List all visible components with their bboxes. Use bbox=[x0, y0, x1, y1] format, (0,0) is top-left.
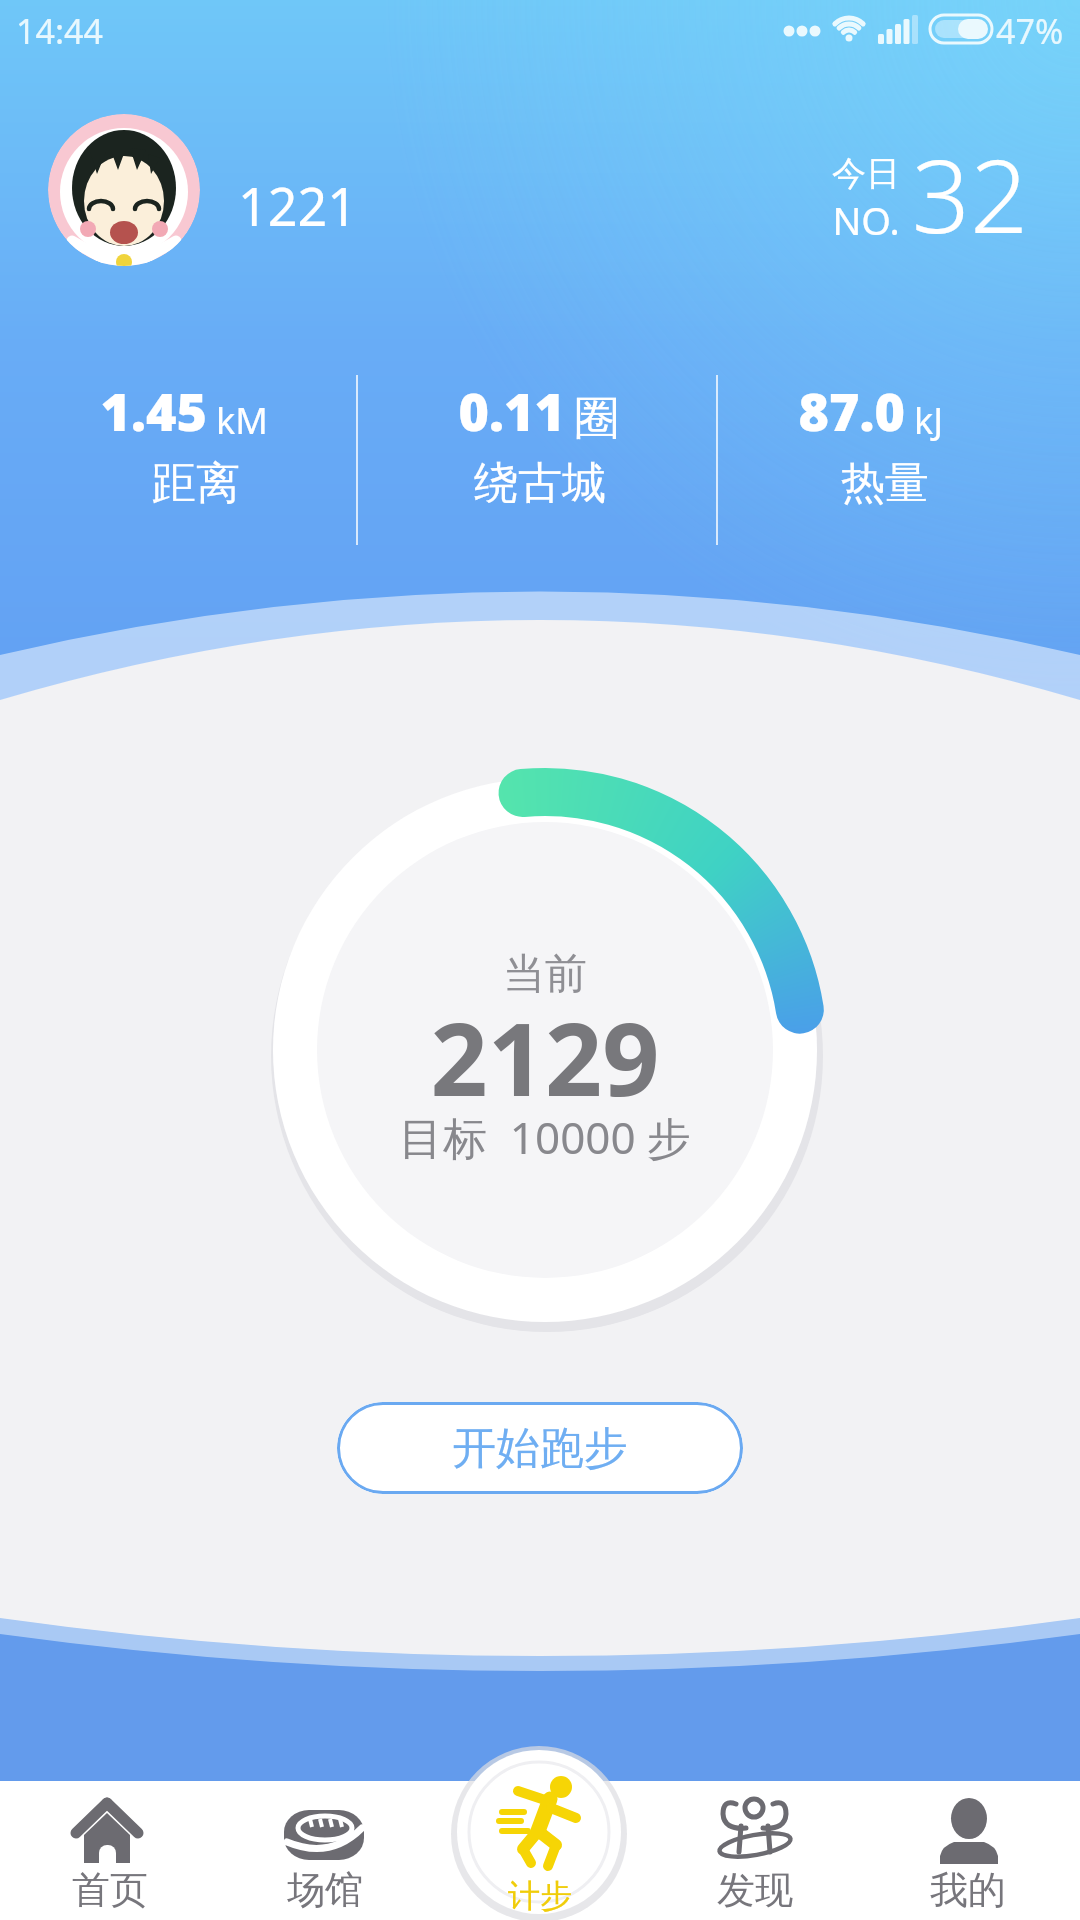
staticText: 开始跑步 bbox=[452, 1421, 628, 1476]
staticText: 计步 bbox=[490, 1876, 590, 1916]
staticText: 今日 bbox=[816, 152, 916, 195]
staticText: NO. bbox=[816, 194, 916, 246]
button[interactable]: 开始跑步 bbox=[337, 1402, 743, 1494]
button[interactable] bbox=[216, 1781, 432, 1920]
staticText: 当前 bbox=[395, 948, 695, 1001]
staticText: kM bbox=[216, 396, 336, 445]
staticText: 距离 bbox=[36, 456, 356, 511]
staticText: 0.11 bbox=[385, 375, 565, 446]
button[interactable] bbox=[455, 1748, 625, 1920]
staticText: 首页 bbox=[50, 1866, 170, 1914]
staticText: 圈 bbox=[574, 390, 694, 448]
button[interactable] bbox=[648, 1781, 864, 1920]
staticText: 绕古城 bbox=[380, 456, 700, 511]
staticText: 2129 bbox=[395, 989, 695, 1125]
button[interactable] bbox=[0, 1781, 216, 1920]
staticText: 87.0 bbox=[725, 375, 905, 446]
staticText: kJ bbox=[914, 396, 1034, 445]
staticText: 热量 bbox=[725, 456, 1045, 511]
staticText: 14:44 bbox=[16, 8, 136, 54]
staticText: 发现 bbox=[695, 1866, 815, 1914]
staticText: 目标 10000 步 bbox=[335, 1107, 755, 1167]
button[interactable] bbox=[48, 114, 200, 266]
button[interactable] bbox=[864, 1781, 1080, 1920]
staticText: 32 bbox=[908, 124, 1032, 263]
staticText: 1.45 bbox=[0, 375, 207, 446]
staticText: 1221 bbox=[238, 170, 438, 241]
staticText: 我的 bbox=[908, 1866, 1028, 1914]
staticText: 场馆 bbox=[265, 1866, 385, 1914]
staticText: 47% bbox=[996, 8, 1080, 54]
